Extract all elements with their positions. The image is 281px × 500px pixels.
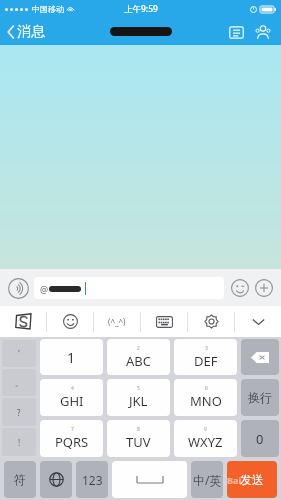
staticText: 8 [137,426,140,433]
button[interactable]: Sogou input [0,306,46,337]
button[interactable]: Settings [188,306,234,337]
button[interactable]: 4 [40,379,103,416]
staticText: 上午9:59 [124,3,158,15]
staticText: 6 [205,385,208,392]
staticText: 123 [82,472,103,488]
button[interactable]: 123 [76,461,108,498]
staticText: 中/英 [193,472,222,488]
staticText: 。 [15,378,23,388]
staticText: 中国移动 [32,4,64,14]
staticText: GHI [60,392,84,410]
button[interactable]: 1 [40,339,103,375]
button[interactable]: 中/英 [191,461,223,498]
button[interactable]: Emoji [47,306,93,337]
button[interactable]: Space [112,461,187,498]
staticText: 换行 [248,390,272,405]
button[interactable]: 3 [174,339,237,375]
staticText: 4 [71,385,74,392]
staticText: ! [18,437,21,448]
staticText: 消息 [17,23,45,41]
button[interactable]: 发送 [227,461,277,498]
staticText: 2 [137,345,140,352]
button[interactable]: Contacts [251,20,275,44]
button[interactable]: 9 [174,420,237,457]
staticText: DEF [194,352,218,370]
button[interactable]: 5 [107,379,170,416]
button[interactable]: Voice message [5,275,31,301]
staticText: ? [17,407,21,418]
staticText: 5 [137,385,140,392]
staticText: 9 [204,426,207,433]
staticText: TUV [126,433,151,451]
button[interactable]: Hide keyboard [235,306,281,337]
button[interactable]: 8 [107,420,170,457]
button[interactable]: ? [2,398,36,426]
button[interactable]: 2 [107,339,170,375]
staticText: ABC [126,352,151,370]
button[interactable]: 换行 [241,379,279,416]
staticText: @ [40,283,49,295]
button[interactable]: More [252,276,276,300]
button[interactable]: 6 [174,379,237,416]
button[interactable]: Kaomoji [94,306,140,337]
button[interactable]: 7 [40,420,103,457]
staticText: 7 [71,426,74,433]
button[interactable]: 消息 [4,20,48,44]
button[interactable]: @ [34,277,224,299]
staticText: JKL [129,392,148,410]
staticText: 符 [14,472,26,487]
staticText: Bai [227,474,242,486]
staticText: 3 [205,345,208,352]
button[interactable]: Switch language [40,461,72,498]
button[interactable]: 0 [241,420,279,457]
staticText: 0 [256,430,264,448]
staticText: ' [18,348,20,359]
button[interactable]: Chat list [225,22,248,43]
button[interactable]: ! [2,428,36,456]
staticText: WXYZ [188,433,223,451]
staticText: MNO [190,392,222,410]
button[interactable]: Backspace [241,339,279,375]
button[interactable]: Emoji [228,276,252,300]
button[interactable]: 符 [4,461,36,498]
staticText: PQRS [55,433,89,451]
staticText: 发送 [240,472,264,487]
staticText: (^_^) [108,316,126,327]
button[interactable]: Keyboard layout [141,306,187,337]
staticText: 1 [67,348,76,367]
